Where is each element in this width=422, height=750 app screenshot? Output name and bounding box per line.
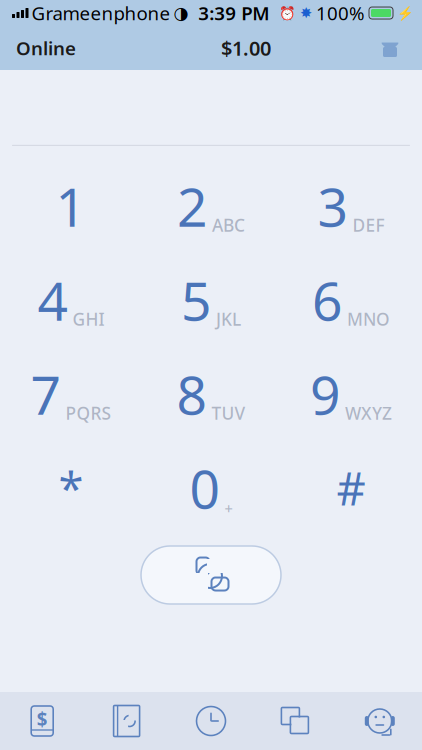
staticText: ⚡ xyxy=(397,5,414,21)
staticText: ⏰ xyxy=(279,5,296,21)
button[interactable]: 5 xyxy=(141,260,281,340)
staticText: $ xyxy=(37,707,48,731)
staticText: 3 xyxy=(317,171,348,241)
button[interactable]: 2 xyxy=(141,166,281,246)
staticText: GHI xyxy=(72,307,104,330)
button[interactable]: Contacts xyxy=(84,693,169,749)
staticText: PQRS xyxy=(65,401,111,424)
staticText: 8 xyxy=(176,359,207,429)
staticText: 5 xyxy=(181,265,212,335)
button[interactable]: 1 xyxy=(1,166,141,246)
staticText: + xyxy=(224,499,232,518)
staticText: MNO xyxy=(347,307,390,330)
button[interactable]: 3 xyxy=(281,166,421,246)
staticText: 100% xyxy=(316,1,365,25)
button[interactable]: 8 xyxy=(141,354,281,434)
button[interactable]: Recents xyxy=(169,693,253,749)
button[interactable]: # xyxy=(281,448,421,528)
staticText: Grameenphone xyxy=(31,1,170,25)
staticText: # xyxy=(336,458,365,518)
staticText: WXYZ xyxy=(345,401,392,424)
button[interactable]: Support xyxy=(338,693,422,749)
button[interactable]: 0 xyxy=(141,448,281,528)
staticText: 6 xyxy=(312,265,343,335)
staticText: * xyxy=(58,458,83,518)
staticText: 0 xyxy=(189,453,220,523)
button[interactable]: Home xyxy=(366,30,414,66)
button[interactable]: Messages xyxy=(253,693,338,749)
button[interactable]: 7 xyxy=(1,354,141,434)
staticText: ◑ xyxy=(173,3,188,23)
button[interactable]: Call xyxy=(141,546,281,604)
staticText: 9 xyxy=(310,359,341,429)
button[interactable]: * xyxy=(1,448,141,528)
staticText: 2 xyxy=(177,171,208,241)
staticText: $1.00 xyxy=(221,35,271,61)
staticText: TUV xyxy=(211,401,245,424)
staticText: 1 xyxy=(55,171,86,241)
staticText: DEF xyxy=(352,213,384,236)
staticText: ✸ xyxy=(300,5,312,21)
staticText: 3:39 PM xyxy=(198,1,269,25)
staticText: 4 xyxy=(37,265,68,335)
button[interactable]: Top up xyxy=(0,693,84,749)
button[interactable]: 4 xyxy=(1,260,141,340)
button[interactable]: 6 xyxy=(281,260,421,340)
staticText: JKL xyxy=(216,307,241,330)
button[interactable]: 9 xyxy=(281,354,421,434)
staticText: 7 xyxy=(30,359,61,429)
staticText: ABC xyxy=(212,213,245,236)
staticText: Online xyxy=(16,36,76,60)
